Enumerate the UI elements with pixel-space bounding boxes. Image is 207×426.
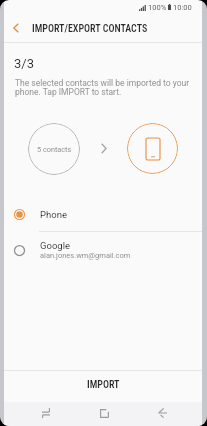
staticText: 5 contacts	[37, 145, 72, 154]
staticText: Google	[40, 240, 70, 251]
button[interactable]: Back	[143, 401, 182, 425]
staticText: IMPORT	[87, 379, 120, 391]
staticText: 3/3	[14, 56, 34, 71]
staticText: IMPORT/EXPORT CONTACTS	[32, 23, 148, 35]
staticText: 100%	[148, 3, 167, 12]
staticText: 10:00	[173, 3, 192, 12]
button[interactable]: This phone	[127, 123, 178, 174]
staticText: The selected contacts will be imported t…	[15, 78, 195, 97]
button[interactable]: 5 contacts	[28, 123, 80, 175]
button[interactable]: Home	[85, 401, 124, 425]
button[interactable]: Recent apps	[26, 401, 65, 425]
button[interactable]: Navigate up	[4, 15, 27, 43]
button[interactable]: Phone	[4, 197, 202, 231]
button[interactable]: IMPORT	[4, 370, 202, 402]
button[interactable]: Google	[4, 232, 202, 268]
staticText: alan.jones.wm@gmail.com	[40, 251, 131, 260]
staticText: Phone	[40, 209, 67, 220]
